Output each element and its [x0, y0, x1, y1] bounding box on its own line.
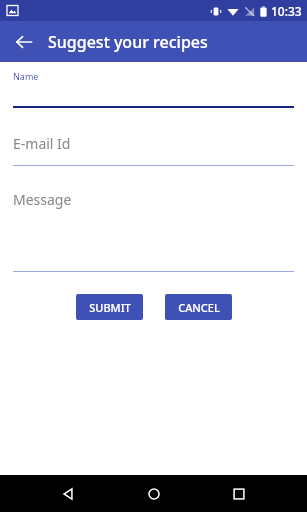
staticText: E-mail Id — [13, 134, 71, 153]
button[interactable]: Home — [137, 477, 171, 511]
staticText: SUBMIT — [89, 300, 131, 315]
staticText: Name — [13, 70, 39, 82]
staticText: Suggest your recipes — [48, 31, 208, 53]
button[interactable]: SUBMIT — [76, 294, 143, 320]
button[interactable]: Recents — [222, 477, 256, 511]
staticText: 10:33 — [271, 3, 302, 19]
button[interactable]: Back — [51, 477, 85, 511]
staticText: CANCEL — [178, 300, 220, 315]
staticText: Message — [13, 190, 72, 209]
button[interactable]: Back — [9, 27, 39, 57]
button[interactable]: CANCEL — [165, 294, 232, 320]
